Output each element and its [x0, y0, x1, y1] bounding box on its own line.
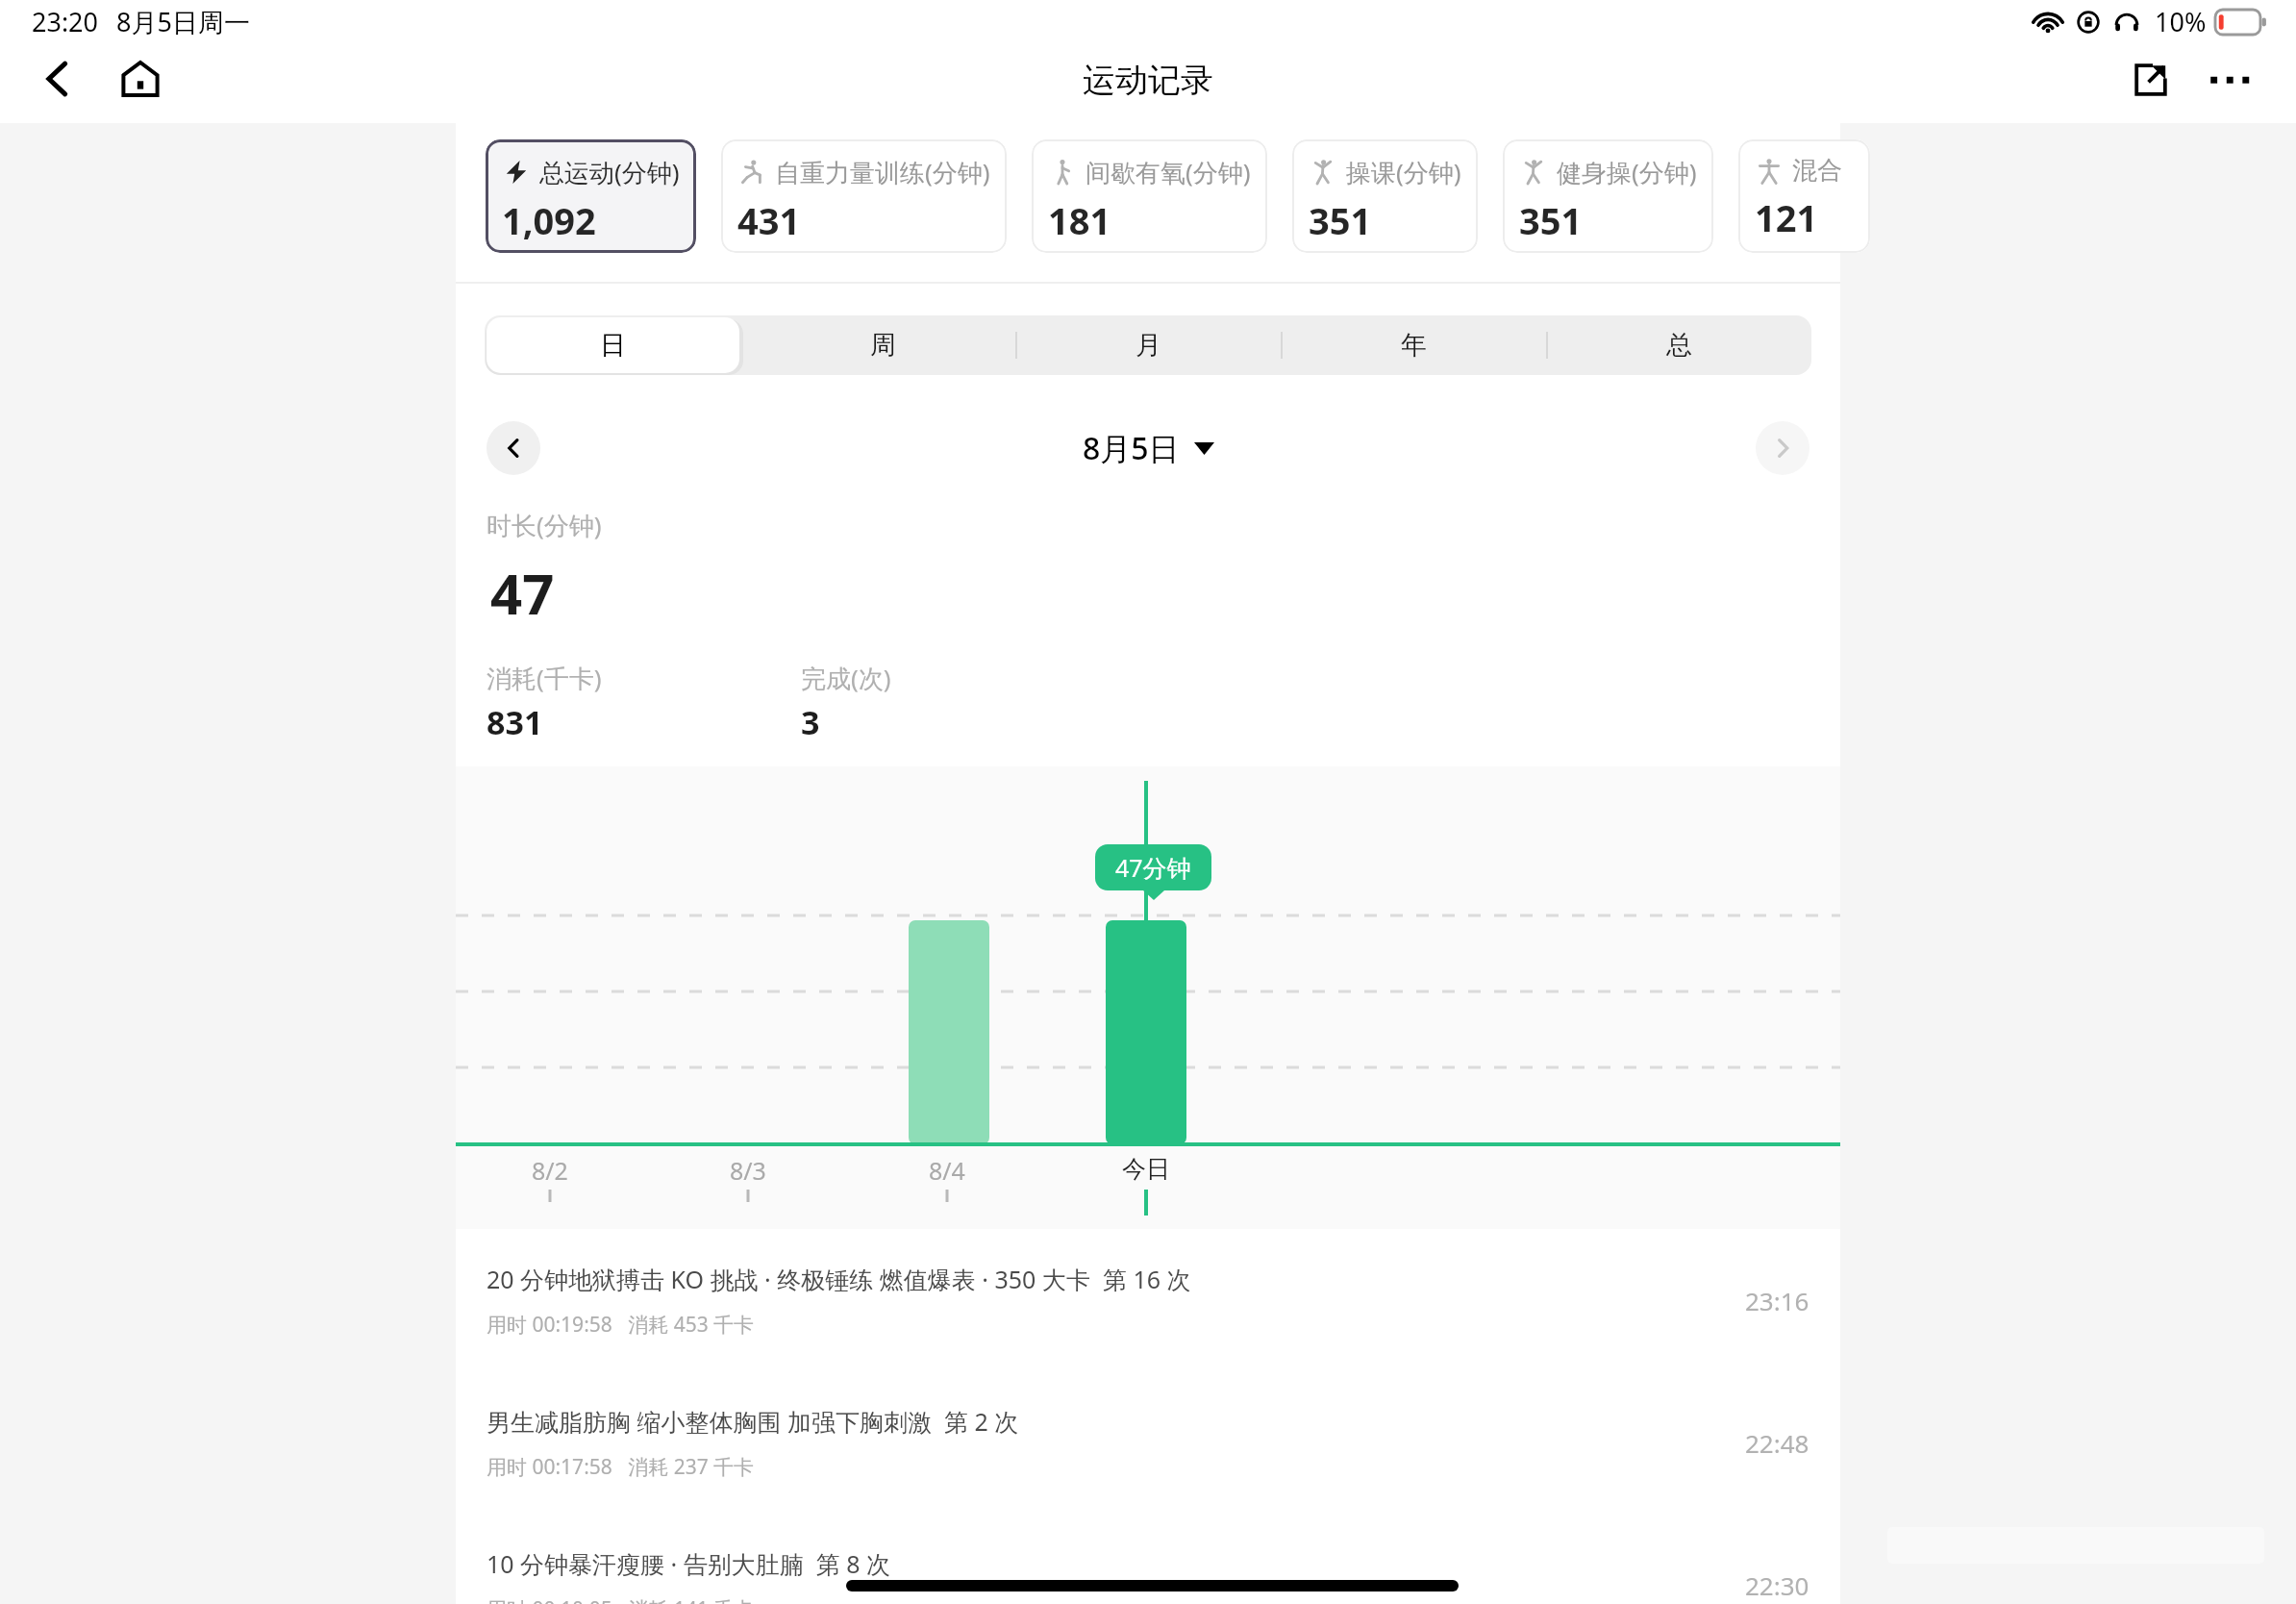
staticText: 831: [487, 700, 543, 744]
staticText: 351: [1309, 195, 1372, 243]
staticText: 8/2: [532, 1154, 568, 1187]
staticText: 10%: [2155, 4, 2207, 39]
staticText: 混合有氧(分钟): [1792, 155, 1854, 187]
staticText: 8月5日周一: [116, 4, 250, 39]
staticText: 8/3: [730, 1154, 766, 1187]
staticText: 总运动(分钟): [539, 155, 680, 189]
staticText: 22:30: [1745, 1568, 1809, 1602]
staticText: 日: [605, 329, 631, 362]
button[interactable]: 操课(分钟): [1292, 139, 1478, 253]
button[interactable]: 10 分钟暴汗瘦腰 · 告别大肚腩 第 8 次: [456, 1514, 1840, 1604]
button[interactable]: Back: [23, 44, 92, 113]
staticText: 男生减脂肪胸 缩小整体胸围 加强下胸刺激 第 2 次: [487, 1405, 1019, 1438]
button[interactable]: 健身操(分钟): [1503, 139, 1713, 253]
staticText: 总: [1666, 329, 1692, 362]
button[interactable]: 男生减脂肪胸 缩小整体胸围 加强下胸刺激 第 2 次: [456, 1371, 1840, 1514]
staticText: 月: [1136, 329, 1161, 362]
staticText: 消耗(千卡): [487, 661, 602, 695]
button[interactable]: 间歇有氧(分钟): [1032, 139, 1267, 253]
staticText: 47分钟: [1115, 851, 1191, 884]
staticText: 431: [737, 195, 801, 243]
staticText: 121: [1755, 192, 1818, 242]
staticText: 年: [1401, 329, 1427, 362]
staticText: 完成(次): [801, 661, 891, 695]
staticText: 操课(分钟): [1346, 155, 1461, 189]
staticText: 日: [600, 329, 626, 362]
staticText: 3: [801, 700, 820, 744]
staticText: 今日: [1122, 1154, 1170, 1184]
staticText: 间歇有氧(分钟): [1086, 155, 1251, 189]
staticText: 自重力量训练(分钟): [775, 155, 990, 189]
staticText: 用时 00:19:58 消耗 453 千卡: [487, 1311, 755, 1339]
staticText: 周: [870, 329, 896, 362]
staticText: 用时 00:10:05 消耗 141 千卡: [487, 1595, 755, 1604]
staticText: 181: [1048, 195, 1111, 243]
staticText: 用时 00:17:58 消耗 237 千卡: [487, 1453, 755, 1481]
staticText: 8/4: [929, 1154, 965, 1187]
staticText: 健身操(分钟): [1557, 155, 1697, 189]
staticText: 1,092: [502, 195, 596, 243]
staticText: 10 分钟暴汗瘦腰 · 告别大肚腩 第 8 次: [487, 1547, 891, 1580]
button[interactable]: 周: [750, 315, 1015, 375]
staticText: 8月5日: [1083, 427, 1180, 469]
staticText: 运动记录: [1083, 60, 1213, 101]
button[interactable]: 日: [485, 315, 750, 375]
button[interactable]: 年: [1281, 315, 1546, 375]
staticText: 47: [490, 555, 555, 631]
button[interactable]: 混合有氧(分钟): [1738, 139, 1870, 253]
button[interactable]: More options: [2195, 45, 2264, 114]
button[interactable]: 8月5日: [1073, 421, 1224, 475]
button[interactable]: 总运动(分钟): [486, 139, 696, 253]
staticText: 22:48: [1745, 1426, 1809, 1460]
button[interactable]: Home: [106, 44, 175, 113]
button[interactable]: 自重力量训练(分钟): [721, 139, 1007, 253]
button[interactable]: Share: [2116, 45, 2185, 114]
button[interactable]: Previous day: [487, 421, 540, 475]
staticText: 23:16: [1745, 1284, 1809, 1317]
button[interactable]: 20 分钟地狱搏击 KO 挑战 · 终极锤练 燃值爆表 · 350 大卡 第 1…: [456, 1229, 1840, 1371]
staticText: 20 分钟地狱搏击 KO 挑战 · 终极锤练 燃值爆表 · 350 大卡 第 1…: [487, 1263, 1191, 1295]
staticText: 23:20: [32, 4, 99, 39]
button[interactable]: 月: [1015, 315, 1281, 375]
button[interactable]: 总: [1546, 315, 1811, 375]
button[interactable]: Next day: [1756, 421, 1809, 475]
staticText: 时长(分钟): [487, 508, 602, 542]
staticText: 351: [1519, 195, 1583, 243]
button[interactable]: 日: [487, 317, 739, 373]
